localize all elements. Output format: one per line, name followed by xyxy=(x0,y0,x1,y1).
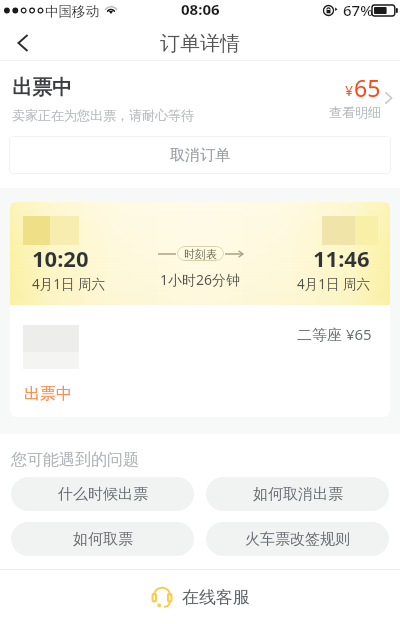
staticText: 10:20 xyxy=(32,243,89,273)
staticText: 取消订单 xyxy=(170,146,230,165)
button[interactable]: 火车票改签规则 xyxy=(206,522,389,556)
staticText: ¥ xyxy=(345,81,354,100)
staticText: 67% xyxy=(343,0,373,20)
staticText: 1小时26分钟 xyxy=(160,270,241,289)
staticText: 什么时候出票 xyxy=(58,485,148,504)
staticText: 65 xyxy=(354,72,381,103)
button[interactable]: 取消订单 xyxy=(9,136,391,174)
staticText: 出票中 xyxy=(24,384,72,404)
button[interactable]: 如何取消出票 xyxy=(206,477,389,511)
staticText: 中国移动 xyxy=(45,3,99,20)
staticText: 如何取消出票 xyxy=(253,485,343,504)
button[interactable]: 什么时候出票 xyxy=(11,477,194,511)
button[interactable]: 时刻表 xyxy=(158,246,243,261)
staticText: 您可能遇到的问题 xyxy=(11,450,139,470)
staticText: 4月1日 周六 xyxy=(297,275,370,293)
staticText: 08:06 xyxy=(181,0,220,19)
button[interactable]: Back xyxy=(0,25,46,61)
staticText: 订单详情 xyxy=(160,31,240,56)
staticText: 4月1日 周六 xyxy=(32,275,105,293)
staticText: 出票中 xyxy=(12,75,72,100)
staticText: 卖家正在为您出票，请耐心等待 xyxy=(12,107,194,123)
staticText: 如何取票 xyxy=(73,530,133,549)
button[interactable]: ¥ xyxy=(329,72,393,120)
button[interactable]: 如何取票 xyxy=(11,522,194,556)
staticText: 二等座 ¥65 xyxy=(297,324,372,344)
staticText: 时刻表 xyxy=(184,247,217,261)
staticText: 查看明细 xyxy=(329,104,381,120)
button[interactable]: 二等座 ¥65 xyxy=(10,305,390,417)
staticText: 在线客服 xyxy=(182,587,250,608)
staticText: 火车票改签规则 xyxy=(245,530,350,549)
staticText: 11:46 xyxy=(313,243,370,273)
button[interactable]: 在线客服 xyxy=(151,586,250,608)
